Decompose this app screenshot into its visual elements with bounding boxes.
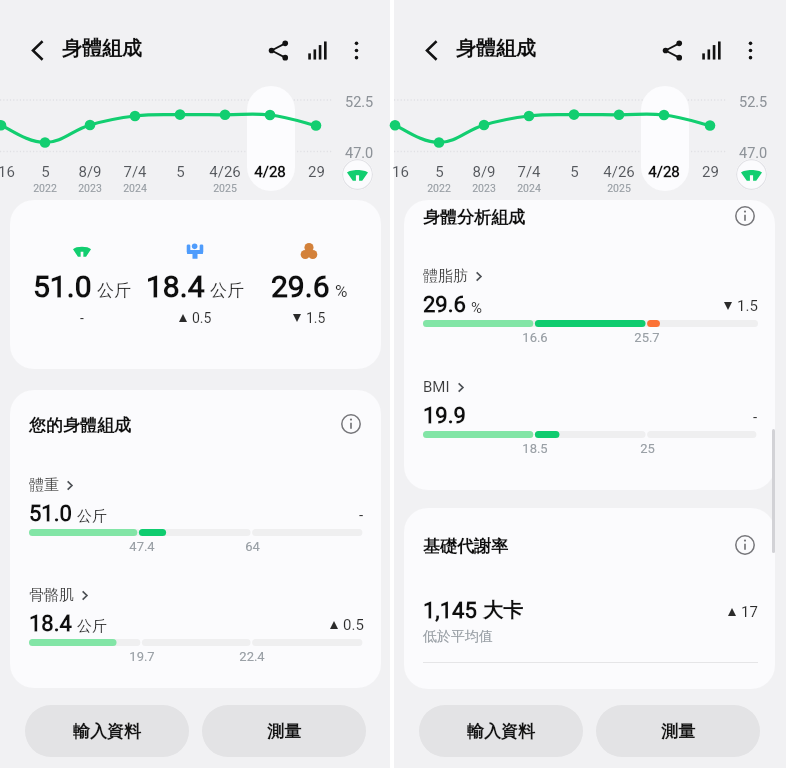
- button[interactable]: Weight scale: [342, 159, 373, 190]
- staticText: 5: [41, 163, 50, 181]
- staticText: 8/9: [472, 163, 496, 181]
- staticText: 29.6: [423, 292, 466, 318]
- staticText: 7/4: [123, 163, 147, 181]
- staticText: 4/26: [603, 163, 635, 181]
- staticText: 8/9: [78, 163, 102, 181]
- staticText: 2025: [213, 182, 237, 194]
- staticText: 18.5: [522, 441, 548, 456]
- staticText: -: [753, 408, 758, 426]
- staticText: 4/26: [209, 163, 241, 181]
- button[interactable]: More options: [337, 31, 375, 69]
- staticText: 測量: [661, 721, 695, 742]
- staticText: 29.6: [271, 269, 330, 304]
- staticText: 18.4: [146, 269, 205, 304]
- staticText: 1.5: [737, 297, 758, 315]
- staticText: 47.0: [345, 145, 374, 162]
- staticText: 0.5: [343, 616, 364, 634]
- staticText: 2024: [517, 182, 541, 194]
- staticText: %: [471, 299, 482, 317]
- staticText: %: [335, 281, 348, 301]
- staticText: 19.9: [423, 403, 466, 429]
- staticText: -: [359, 506, 364, 524]
- staticText: 25.7: [634, 330, 660, 345]
- staticText: 5: [176, 163, 185, 181]
- staticText: 2023: [78, 182, 102, 194]
- staticText: 1,145: [423, 598, 477, 624]
- staticText: 5: [435, 163, 444, 181]
- staticText: 47.0: [739, 145, 768, 162]
- staticText: 2022: [427, 182, 451, 194]
- staticText: 5: [570, 163, 579, 181]
- staticText: 51.0: [33, 269, 92, 304]
- staticText: 大卡: [483, 598, 523, 623]
- staticText: 身體組成: [456, 36, 536, 61]
- staticText: 52.5: [739, 94, 768, 111]
- button[interactable]: Chart view: [298, 31, 336, 69]
- staticText: 17: [741, 603, 758, 621]
- staticText: 7/4: [517, 163, 541, 181]
- staticText: 您的身體組成: [29, 415, 131, 436]
- staticText: 公斤: [210, 280, 244, 301]
- button[interactable]: 骨骼肌: [10, 586, 381, 662]
- staticText: 測量: [267, 721, 301, 742]
- staticText: 16: [0, 163, 15, 181]
- staticText: 47.4: [129, 539, 155, 554]
- staticText: 2023: [472, 182, 496, 194]
- button[interactable]: Weight scale: [736, 159, 767, 190]
- button[interactable]: 測量: [202, 705, 366, 757]
- staticText: 19.7: [129, 649, 155, 664]
- staticText: 18.4: [29, 611, 72, 637]
- button[interactable]: Information: [730, 530, 760, 560]
- staticText: 2025: [607, 182, 631, 194]
- staticText: 64: [245, 539, 260, 554]
- staticText: 基礎代謝率: [423, 536, 508, 557]
- staticText: 0.5: [192, 310, 212, 326]
- staticText: 52.5: [345, 94, 374, 111]
- staticText: 4/28: [254, 163, 286, 181]
- staticText: BMI: [423, 378, 450, 396]
- button[interactable]: 體脂肪: [404, 267, 775, 343]
- staticText: 輸入資料: [73, 721, 141, 742]
- staticText: 2022: [33, 182, 57, 194]
- staticText: 25: [640, 441, 655, 456]
- button[interactable]: Share: [259, 31, 297, 69]
- staticText: 4/28: [648, 163, 680, 181]
- staticText: -: [80, 310, 84, 326]
- staticText: 骨骼肌: [29, 586, 74, 605]
- staticText: 身體分析組成: [423, 207, 525, 228]
- staticText: 公斤: [77, 507, 107, 526]
- staticText: 輸入資料: [467, 721, 535, 742]
- button[interactable]: 51.0: [10, 200, 381, 369]
- button[interactable]: 輸入資料: [25, 705, 189, 757]
- button[interactable]: BMI: [404, 378, 775, 454]
- staticText: 16: [392, 163, 409, 181]
- staticText: 29: [308, 163, 325, 181]
- staticText: 16.6: [522, 330, 548, 345]
- button[interactable]: 輸入資料: [419, 705, 583, 757]
- staticText: 2024: [123, 182, 147, 194]
- staticText: 公斤: [97, 280, 131, 301]
- staticText: 低於平均值: [423, 628, 493, 646]
- staticText: 51.0: [29, 501, 72, 527]
- button[interactable]: Chart view: [692, 31, 730, 69]
- button[interactable]: More options: [731, 31, 769, 69]
- button[interactable]: Back: [412, 31, 450, 69]
- button[interactable]: Share: [653, 31, 691, 69]
- staticText: 公斤: [77, 617, 107, 636]
- button[interactable]: Information: [336, 409, 366, 439]
- staticText: 體脂肪: [423, 267, 468, 286]
- staticText: 1.5: [306, 310, 326, 326]
- button[interactable]: 測量: [596, 705, 760, 757]
- button[interactable]: Information: [730, 201, 760, 231]
- staticText: 身體組成: [62, 36, 142, 61]
- staticText: 體重: [29, 476, 59, 495]
- staticText: 22.4: [239, 649, 265, 664]
- button[interactable]: Back: [18, 31, 56, 69]
- button[interactable]: 體重: [10, 476, 381, 552]
- staticText: 29: [702, 163, 719, 181]
